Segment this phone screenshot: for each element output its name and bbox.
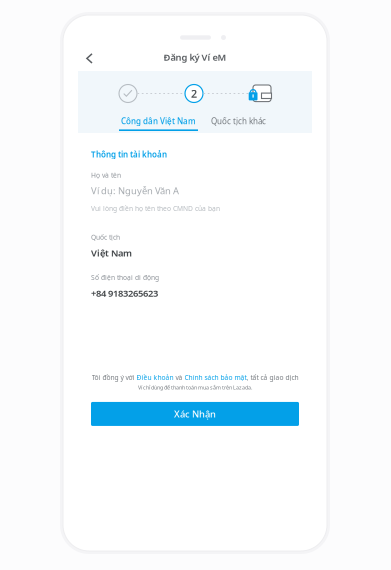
staticText: Công dân Việt Nam <box>121 116 196 126</box>
button[interactable]: Back <box>76 45 103 72</box>
staticText: Vui lòng điền họ tên theo CMND của bạn <box>91 204 220 213</box>
button[interactable]: Công dân Việt Nam <box>78 116 206 131</box>
staticText: Đăng ký Ví eM <box>163 51 226 63</box>
staticText: Ví dụ: Nguyễn Văn A <box>91 184 179 197</box>
staticText: Họ và tên <box>91 171 121 179</box>
staticText: , tất cả giao dịch <box>246 373 298 382</box>
staticText: Thông tin tài khoản <box>91 149 167 160</box>
staticText: Việt Nam <box>91 247 132 259</box>
button[interactable]: Quốc tịch khác <box>206 116 301 131</box>
staticText: Xác Nhận <box>174 408 216 420</box>
staticText: Quốc tịch khác <box>211 116 266 126</box>
staticText: 2 <box>191 86 197 101</box>
staticText: Ví chỉ dùng để thanh toán mua sắm trên L… <box>138 384 252 391</box>
staticText: Quốc tịch <box>91 233 120 242</box>
button[interactable]: Xác Nhận <box>91 402 299 426</box>
staticText: +84 9183265623 <box>91 287 158 299</box>
staticText: Điều khoản <box>136 373 173 382</box>
staticText: Tôi đồng ý với <box>91 373 136 382</box>
staticText: Số điện thoại di động <box>91 273 159 282</box>
staticText: Chính sách bảo mật <box>184 373 246 382</box>
staticText: và <box>173 373 184 382</box>
